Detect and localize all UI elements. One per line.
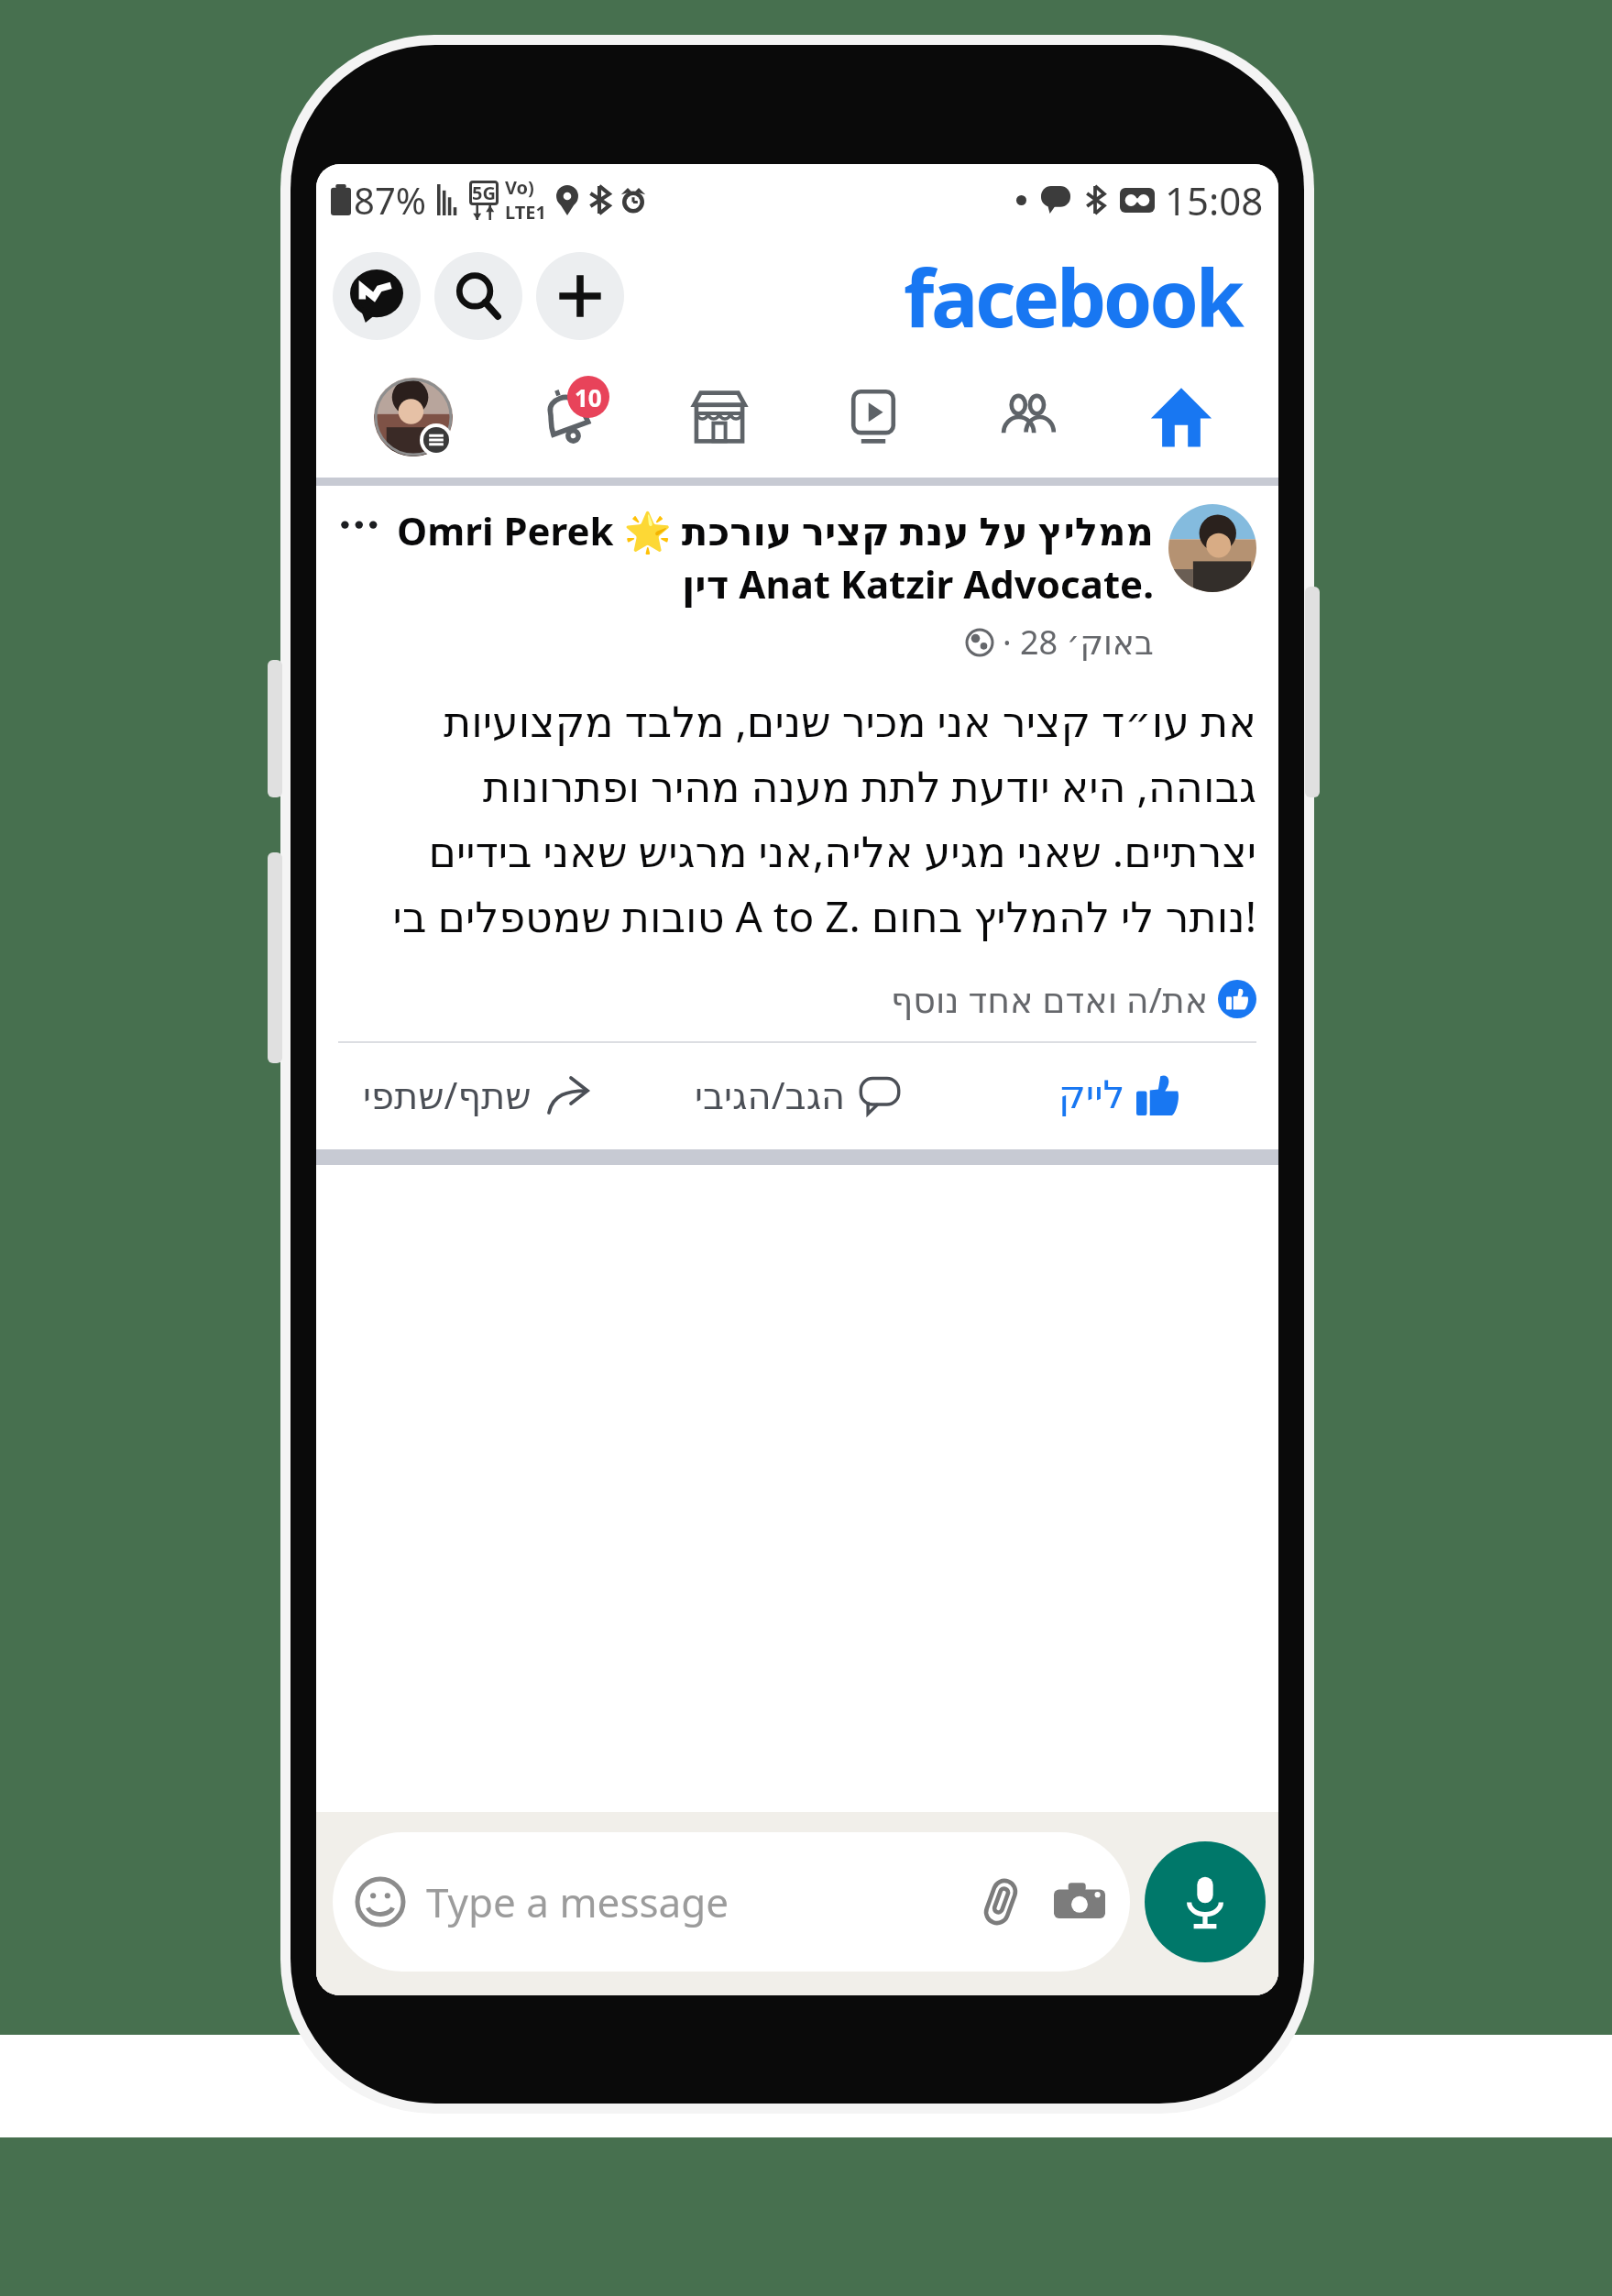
staticText: 10: [575, 381, 602, 413]
button[interactable]: Groups: [950, 357, 1104, 478]
staticText: 87%: [354, 175, 426, 225]
button[interactable]: הגב/הגיבי: [637, 1043, 958, 1146]
button[interactable]: שתף/שתפי: [316, 1043, 637, 1146]
button[interactable]: Notifications: [489, 357, 642, 478]
staticText: Type a message: [426, 1874, 729, 1929]
button[interactable]: Create post: [536, 252, 624, 340]
button[interactable]: More options: [338, 504, 384, 550]
button[interactable]: Profile: [336, 357, 489, 478]
button[interactable]: Watch: [796, 357, 950, 478]
staticText: הגב/הגיבי: [695, 1070, 846, 1119]
button[interactable]: Home: [1104, 357, 1258, 478]
button[interactable]: Marketplace: [642, 357, 796, 478]
staticText: את/ה ואדם אחד נוסף: [891, 975, 1209, 1023]
button[interactable]: facebook: [904, 243, 1262, 350]
button[interactable]: לייק: [958, 1043, 1278, 1146]
button[interactable]: Type a message: [333, 1832, 1130, 1972]
button[interactable]: Messenger: [333, 252, 421, 340]
button[interactable]: Camera: [1051, 1873, 1108, 1930]
staticText: LTE1: [505, 200, 546, 225]
staticText: את עו״ד קציר אני מכיר שנים, מלבד מקצועיו…: [338, 692, 1256, 944]
staticText: ·: [1003, 620, 1012, 665]
button[interactable]: את/ה ואדם אחד נוסף: [338, 975, 1256, 1023]
staticText: Vo): [505, 175, 534, 200]
staticText: לייק: [1058, 1072, 1125, 1117]
button[interactable]: Attach file: [972, 1873, 1029, 1930]
staticText: 28 באוק׳: [1020, 620, 1154, 665]
staticText: Omri Perek 🌟 ממליץ על ענת קציר עורכת דין…: [393, 504, 1154, 610]
staticText: שתף/שתפי: [363, 1070, 532, 1119]
button[interactable]: Search: [434, 252, 522, 340]
button[interactable]: Record voice message: [1145, 1841, 1266, 1962]
staticText: 15:08: [1165, 174, 1264, 226]
staticText: 5G: [472, 181, 496, 205]
